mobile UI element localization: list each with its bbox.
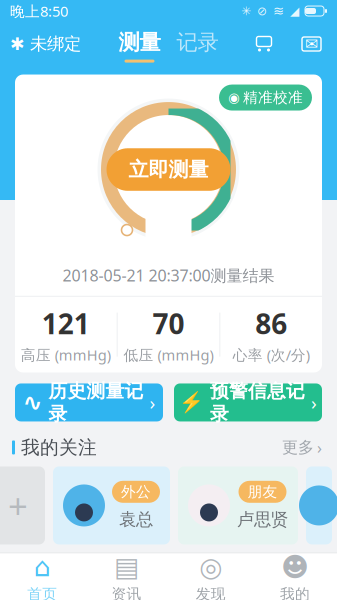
staticText: ◢ (290, 4, 299, 18)
staticText: 86 (255, 305, 287, 342)
staticText: ⊘ (257, 4, 267, 18)
staticText: ∿ (22, 389, 42, 416)
button[interactable]: 更多 (282, 433, 325, 462)
staticText: 袁总 (119, 509, 153, 530)
button[interactable]: ▤ (84, 553, 168, 600)
staticText: 我的 (280, 585, 310, 600)
button[interactable]: 购物车 (246, 26, 282, 62)
staticText: 预警信息记录 (210, 379, 305, 425)
staticText: ≋ (273, 3, 284, 18)
staticText: 发现 (196, 585, 226, 600)
staticText: 心率 (次/分) (233, 345, 310, 364)
staticText: ✳ (241, 4, 251, 18)
staticText: 外公 (121, 483, 151, 501)
button[interactable]: ✱ (0, 25, 81, 63)
button[interactable]: 记录 (176, 29, 218, 63)
staticText: ☻ (281, 552, 309, 582)
staticText: ✉ (305, 35, 318, 53)
staticText: 我的关注 (21, 436, 97, 459)
staticText: 高压 (mmHg) (21, 345, 111, 364)
staticText: ◎ (199, 552, 222, 582)
staticText: 资讯 (111, 585, 141, 600)
staticText: ◉ (228, 90, 240, 105)
staticText: › (149, 390, 155, 415)
button[interactable]: ☻ (253, 553, 337, 600)
staticText: ⚡ (179, 391, 204, 414)
staticText: › (317, 437, 322, 458)
staticText: 2018-05-21 20:37:00测量结果 (62, 264, 274, 286)
button[interactable]: ∿ (15, 383, 163, 421)
staticText: 测量 (118, 29, 160, 56)
staticText: 未绑定 (30, 33, 81, 55)
staticText: 记录 (176, 29, 218, 56)
staticText: 70 (152, 305, 184, 342)
button[interactable]: ◎ (168, 553, 253, 600)
staticText: ▤ (114, 552, 139, 582)
staticText: 低压 (mmHg) (123, 345, 213, 364)
staticText: 更多 (282, 438, 314, 457)
button[interactable]: ⌂ (0, 553, 84, 600)
button[interactable]: 添加关注 (0, 466, 45, 544)
button[interactable]: ⚡ (174, 383, 322, 421)
staticText: ✱ (10, 34, 25, 54)
button[interactable]: 朋友 (178, 466, 298, 544)
button[interactable]: 测量 (118, 29, 160, 63)
button[interactable]: 立即测量 (106, 148, 230, 191)
staticText: 精准校准 (243, 88, 303, 106)
button[interactable]: 消息 (294, 29, 329, 59)
staticText: 晚上8:50 (10, 1, 68, 21)
staticText: ⌂ (34, 552, 51, 582)
staticText: 121 (42, 305, 90, 342)
staticText: 朋友 (247, 483, 277, 501)
staticText: 首页 (27, 585, 57, 600)
button[interactable]: 外公 (53, 466, 170, 544)
staticText: 立即测量 (128, 157, 208, 182)
staticText: 历史测量记录 (48, 379, 143, 425)
staticText: 卢思贤 (237, 509, 288, 530)
button[interactable]: ◉ (219, 84, 312, 110)
staticText: + (8, 482, 28, 528)
staticText: › (311, 390, 317, 415)
